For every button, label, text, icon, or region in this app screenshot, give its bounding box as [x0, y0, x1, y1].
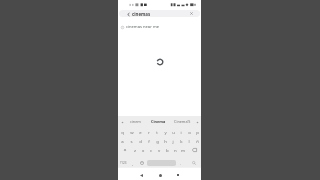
button[interactable]: j	[169, 136, 177, 145]
staticText: h	[164, 138, 167, 144]
staticText: r	[148, 129, 150, 135]
staticText: a	[121, 138, 124, 144]
staticText: i	[180, 129, 182, 135]
button[interactable]: z	[131, 145, 139, 155]
staticText: q	[121, 129, 124, 135]
staticText: t	[156, 129, 158, 135]
staticText: b	[166, 147, 169, 153]
staticText: e	[139, 129, 142, 135]
button[interactable]: Cinema	[147, 116, 170, 127]
button[interactable]: cinem	[124, 116, 147, 127]
button[interactable]: f	[145, 136, 153, 145]
button[interactable]: i	[177, 127, 185, 136]
button[interactable]: c	[147, 145, 155, 155]
button[interactable]: u	[169, 127, 177, 136]
button[interactable]: Back	[135, 169, 147, 180]
staticText: m	[181, 147, 186, 153]
button[interactable]: t	[153, 127, 161, 136]
other: Clear	[190, 12, 193, 15]
staticText: Cinema'S	[174, 119, 191, 124]
staticText: k	[180, 138, 183, 144]
button[interactable]: Recents	[172, 169, 184, 180]
button[interactable]: o	[185, 127, 193, 136]
button[interactable]: ?123	[118, 160, 129, 166]
staticText: n	[174, 147, 177, 153]
button[interactable]: Emoji	[137, 160, 147, 166]
button[interactable]: Home	[154, 169, 166, 180]
button[interactable]: q	[118, 127, 127, 136]
staticText: y	[164, 129, 167, 135]
staticText: cinem	[130, 119, 141, 124]
staticText: j	[172, 138, 174, 144]
button[interactable]: Comma	[129, 160, 137, 166]
staticText: s	[130, 138, 133, 144]
staticText: o	[188, 129, 191, 135]
staticText: w	[130, 129, 134, 135]
staticText: c	[150, 147, 153, 153]
staticText: u	[172, 129, 175, 135]
button[interactable]: More suggestions	[195, 120, 199, 124]
staticText: ñ	[196, 138, 199, 144]
button[interactable]: w	[127, 127, 136, 136]
button[interactable]: e	[136, 127, 145, 136]
button[interactable]: x	[139, 145, 147, 155]
button[interactable]: l	[185, 136, 193, 145]
button[interactable]: cinemas	[119, 10, 200, 17]
button[interactable]: h	[161, 136, 169, 145]
button[interactable]: p	[193, 127, 201, 136]
staticText: p	[196, 129, 199, 135]
staticText: z	[134, 147, 137, 153]
button[interactable]: a	[118, 136, 127, 145]
button[interactable]: y	[161, 127, 169, 136]
button[interactable]: d	[136, 136, 145, 145]
button[interactable]: Backspace	[187, 145, 201, 155]
button[interactable]: Cinema'S	[170, 116, 195, 127]
button[interactable]: r	[145, 127, 153, 136]
button[interactable]: b	[163, 145, 171, 155]
button[interactable]: Voice	[120, 120, 124, 124]
button[interactable]: m	[179, 145, 187, 155]
staticText: x	[142, 147, 145, 153]
staticText: v	[158, 147, 161, 153]
staticText: cinemas	[132, 11, 151, 17]
staticText: f	[148, 138, 150, 144]
staticText: g	[156, 138, 159, 144]
button[interactable]: Search	[186, 160, 201, 166]
staticText: cinemas near me	[126, 24, 160, 30]
staticText: l	[188, 138, 190, 144]
staticText: d	[139, 138, 142, 144]
staticText: .	[180, 161, 182, 166]
staticText: ,	[132, 161, 134, 166]
button[interactable]: v	[155, 145, 163, 155]
button[interactable]: Shift	[118, 145, 131, 155]
staticText: ?123	[120, 161, 127, 165]
button[interactable]: ñ	[193, 136, 201, 145]
button[interactable]: Back	[126, 12, 130, 16]
button[interactable]: k	[177, 136, 185, 145]
staticText: Cinema	[151, 119, 166, 124]
button[interactable]: n	[171, 145, 179, 155]
button[interactable]: g	[153, 136, 161, 145]
button[interactable]: cinemas near me	[118, 22, 201, 32]
button[interactable]: s	[127, 136, 136, 145]
